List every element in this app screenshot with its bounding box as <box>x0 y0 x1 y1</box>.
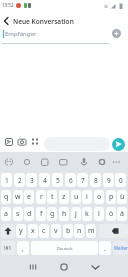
staticText: x <box>31 226 35 236</box>
staticText: f <box>40 209 43 219</box>
staticText: t <box>51 192 54 202</box>
staticText: a <box>4 209 8 219</box>
staticText: 7 <box>81 176 85 185</box>
button[interactable]: z <box>59 190 69 204</box>
button[interactable]: i <box>82 190 92 204</box>
staticText: i <box>86 192 88 202</box>
button[interactable]: k <box>82 207 92 221</box>
button[interactable] <box>112 138 125 151</box>
button[interactable]: d <box>24 207 34 221</box>
button[interactable]: g <box>47 207 57 221</box>
staticText: s <box>16 209 20 219</box>
button[interactable] <box>99 224 128 238</box>
button[interactable]: b <box>63 224 73 238</box>
staticText: 8 <box>94 176 98 185</box>
button[interactable]: 4 <box>39 173 50 187</box>
staticText: Deutsch <box>57 246 73 251</box>
staticText: 4 <box>43 176 47 185</box>
button[interactable] <box>86 258 104 276</box>
button[interactable] <box>112 29 121 38</box>
button[interactable]: , <box>17 241 29 255</box>
staticText: k <box>85 209 89 219</box>
button[interactable] <box>55 258 73 276</box>
button[interactable]: m <box>86 224 96 238</box>
button[interactable] <box>30 137 40 147</box>
button[interactable]: e <box>24 190 34 204</box>
staticText: Weiter <box>114 245 128 251</box>
staticText: p <box>109 192 114 202</box>
button[interactable]: a <box>1 207 11 221</box>
staticText: 3 <box>30 176 34 185</box>
staticText: , <box>22 244 24 253</box>
staticText: n <box>77 226 82 236</box>
staticText: d <box>27 209 32 219</box>
button[interactable]: 1 <box>1 173 12 187</box>
staticText: j <box>75 209 77 219</box>
staticText: Empfänger <box>5 30 37 38</box>
button[interactable]: s <box>13 207 23 221</box>
staticText: 6 <box>69 176 73 185</box>
button[interactable] <box>1 224 15 238</box>
staticText: w <box>15 192 21 202</box>
button[interactable]: ä <box>117 207 127 221</box>
button[interactable]: y <box>16 224 26 238</box>
staticText: !#1 <box>4 245 12 252</box>
staticText: 2 <box>18 176 22 185</box>
button[interactable]: n <box>74 224 84 238</box>
button[interactable]: 3 <box>26 173 37 187</box>
button[interactable] <box>24 258 42 276</box>
button[interactable]: j <box>71 207 81 221</box>
staticText: ü <box>120 192 125 202</box>
staticText: Neue Konversation <box>13 17 74 26</box>
button[interactable] <box>4 137 14 147</box>
button[interactable]: w <box>13 190 23 204</box>
button[interactable]: t <box>47 190 57 204</box>
button[interactable]: l <box>94 207 104 221</box>
button[interactable]: Weiter <box>113 241 128 255</box>
staticText: e <box>27 192 31 202</box>
button[interactable]: u <box>71 190 81 204</box>
button[interactable]: x <box>28 224 38 238</box>
button[interactable]: r <box>36 190 46 204</box>
button[interactable]: 6 <box>65 173 76 187</box>
button[interactable]: c <box>39 224 49 238</box>
button[interactable]: 0 <box>115 173 126 187</box>
button[interactable]: q <box>1 190 11 204</box>
button[interactable]: . <box>99 241 111 255</box>
staticText: l <box>98 209 100 219</box>
staticText: r <box>40 192 43 202</box>
button[interactable] <box>17 137 27 147</box>
staticText: m <box>88 226 95 236</box>
staticText: 9 <box>107 176 111 185</box>
staticText: 5 <box>56 176 60 185</box>
button[interactable]: h <box>59 207 69 221</box>
button[interactable]: !#1 <box>1 241 15 255</box>
staticText: y <box>19 226 23 236</box>
staticText: h <box>62 209 67 219</box>
button[interactable]: f <box>36 207 46 221</box>
staticText: ö <box>109 209 114 219</box>
staticText: ä <box>120 209 124 219</box>
button[interactable]: ö <box>106 207 116 221</box>
button[interactable]: v <box>51 224 61 238</box>
staticText: . <box>104 244 106 253</box>
staticText: c <box>42 226 46 236</box>
button[interactable]: o <box>94 190 104 204</box>
staticText: u <box>74 192 79 202</box>
staticText: b <box>66 226 71 236</box>
staticText: 13:52 <box>2 2 14 8</box>
button[interactable]: 9 <box>103 173 114 187</box>
button[interactable]: p <box>106 190 116 204</box>
button[interactable]: Deutsch <box>31 241 98 255</box>
staticText: v <box>54 226 58 236</box>
staticText: g <box>50 209 55 219</box>
staticText: q <box>4 192 9 202</box>
button[interactable]: ü <box>117 190 127 204</box>
button[interactable]: 2 <box>14 173 25 187</box>
button[interactable]: 8 <box>90 173 101 187</box>
button[interactable]: 7 <box>77 173 88 187</box>
staticText: z <box>62 192 66 202</box>
button[interactable]: 5 <box>52 173 63 187</box>
staticText: 0 <box>119 176 123 185</box>
